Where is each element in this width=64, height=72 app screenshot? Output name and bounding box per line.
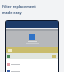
staticText: Filter replacement made easy [2,4,36,15]
